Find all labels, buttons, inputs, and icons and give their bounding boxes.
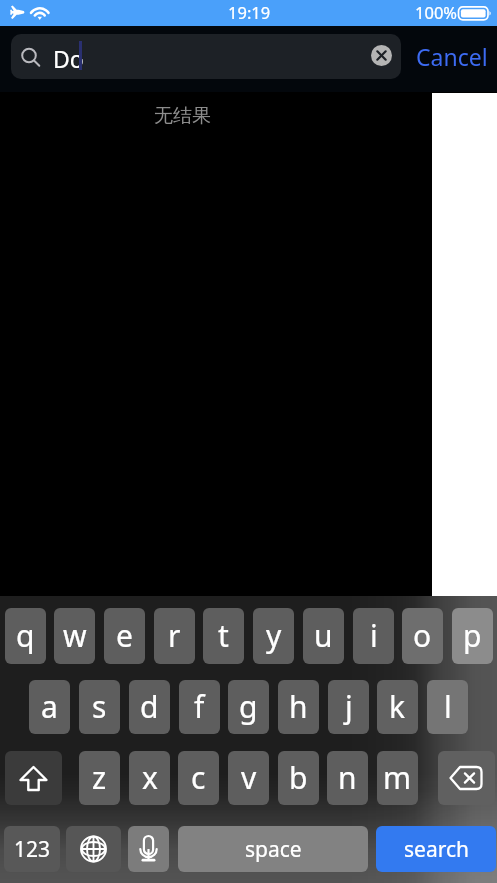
button[interactable]: a — [29, 680, 70, 734]
staticText: w — [63, 615, 87, 656]
button[interactable]: space — [178, 826, 368, 872]
button[interactable]: Dictation — [128, 826, 169, 872]
button[interactable]: k — [377, 680, 418, 734]
staticText: s — [92, 686, 107, 727]
button[interactable]: r — [154, 608, 195, 664]
button[interactable]: x — [129, 751, 170, 805]
staticText: 123 — [14, 835, 51, 864]
button[interactable]: y — [253, 608, 294, 664]
button[interactable]: v — [228, 751, 269, 805]
button[interactable]: n — [327, 751, 368, 805]
staticText: n — [338, 757, 357, 798]
staticText: p — [463, 615, 482, 656]
staticText: k — [389, 686, 406, 727]
staticText: f — [194, 686, 205, 727]
button[interactable]: search — [376, 826, 496, 872]
button[interactable]: z — [79, 751, 120, 805]
staticText: search — [404, 835, 469, 864]
staticText: o — [413, 615, 432, 656]
button[interactable]: Shift — [5, 751, 62, 805]
staticText: m — [383, 757, 412, 798]
button[interactable]: s — [79, 680, 120, 734]
staticText: 无结果 — [154, 104, 211, 128]
staticText: z — [92, 757, 107, 798]
button[interactable]: h — [278, 680, 319, 734]
button[interactable]: l — [427, 680, 468, 734]
staticText: i — [370, 615, 378, 656]
button[interactable]: d — [129, 680, 170, 734]
button[interactable]: o — [402, 608, 443, 664]
staticText: d — [140, 686, 159, 727]
staticText: Do — [53, 43, 84, 74]
button[interactable]: Next keyboard — [66, 826, 121, 872]
staticText: a — [41, 686, 58, 727]
button[interactable]: Do — [11, 34, 401, 79]
button[interactable]: q — [5, 608, 46, 664]
staticText: y — [266, 615, 282, 656]
staticText: g — [239, 686, 258, 727]
staticText: 100% — [415, 1, 458, 23]
button[interactable]: e — [104, 608, 145, 664]
button[interactable]: u — [303, 608, 344, 664]
staticText: c — [191, 757, 206, 798]
button[interactable]: g — [228, 680, 269, 734]
button[interactable]: m — [377, 751, 418, 805]
button[interactable]: b — [278, 751, 319, 805]
staticText: l — [444, 686, 452, 727]
button[interactable]: c — [178, 751, 219, 805]
staticText: r — [168, 615, 181, 656]
staticText: 19:19 — [228, 1, 271, 23]
button[interactable]: Cancel — [410, 34, 494, 79]
button[interactable]: p — [452, 608, 493, 664]
button[interactable]: f — [179, 680, 220, 734]
button[interactable]: i — [353, 608, 394, 664]
staticText: q — [16, 615, 35, 656]
button[interactable]: j — [328, 680, 369, 734]
staticText: space — [245, 835, 302, 864]
button[interactable]: t — [203, 608, 244, 664]
staticText: b — [289, 757, 308, 798]
staticText: t — [218, 615, 229, 656]
button[interactable]: 123 — [4, 826, 60, 872]
staticText: j — [345, 686, 353, 727]
staticText: v — [241, 757, 257, 798]
button[interactable]: Backspace — [438, 751, 495, 805]
staticText: e — [116, 615, 133, 656]
staticText: h — [289, 686, 308, 727]
staticText: u — [314, 615, 333, 656]
staticText: Cancel — [416, 41, 488, 72]
button[interactable]: w — [54, 608, 95, 664]
staticText: x — [142, 757, 158, 798]
button[interactable]: Clear text — [371, 45, 392, 66]
